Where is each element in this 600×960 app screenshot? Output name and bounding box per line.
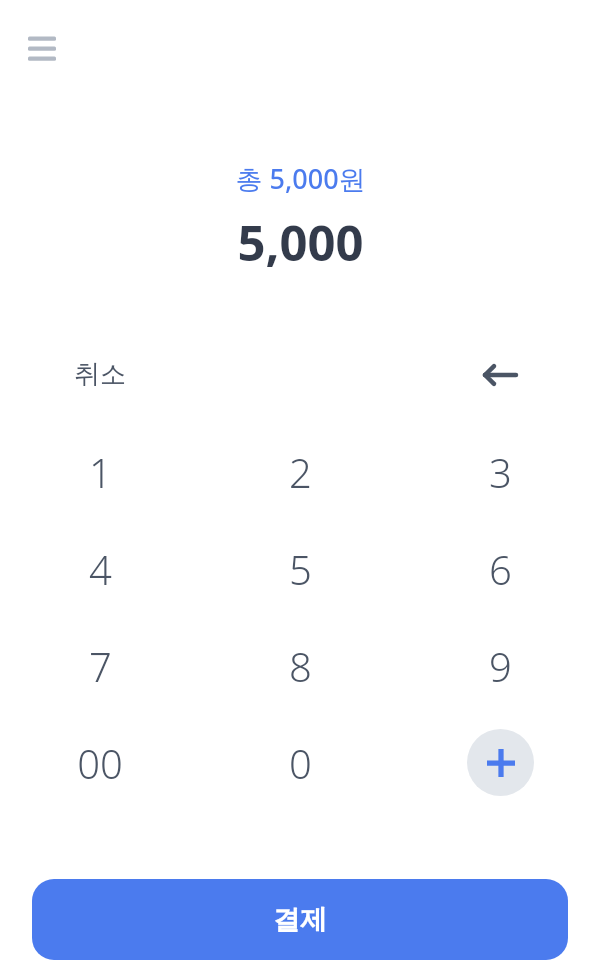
staticText: 1 [89, 445, 112, 499]
staticText: 6 [489, 542, 512, 596]
staticText: 00 [77, 736, 123, 790]
button[interactable]: 00 [0, 714, 200, 811]
button[interactable]: 0 [200, 714, 400, 811]
staticText: 결제 [273, 903, 327, 937]
staticText: 5 [289, 542, 312, 596]
button[interactable]: 8 [200, 617, 400, 714]
staticText: 3 [489, 445, 512, 499]
button[interactable]: 5 [200, 520, 400, 617]
button[interactable]: 2 [200, 423, 400, 520]
button[interactable]: 6 [400, 520, 600, 617]
button[interactable]: 7 [0, 617, 200, 714]
button[interactable]: Backspace [400, 337, 600, 413]
button[interactable]: 결제 [32, 879, 568, 960]
staticText: 5,000 [237, 209, 364, 276]
button[interactable]: 4 [0, 520, 200, 617]
button[interactable]: 9 [400, 617, 600, 714]
button[interactable]: 3 [400, 423, 600, 520]
staticText: 4 [89, 542, 112, 596]
staticText: 2 [289, 445, 312, 499]
staticText: 0 [289, 736, 312, 790]
staticText: 7 [89, 639, 112, 693]
staticText: 총 5,000원 [235, 160, 366, 197]
staticText: 취소 [74, 358, 126, 391]
button[interactable]: 취소 [0, 326, 200, 423]
button[interactable]: Add amount [467, 729, 534, 796]
staticText: 8 [289, 639, 312, 693]
staticText: 9 [489, 639, 512, 693]
button[interactable]: 1 [0, 423, 200, 520]
button[interactable]: Menu [18, 22, 66, 70]
